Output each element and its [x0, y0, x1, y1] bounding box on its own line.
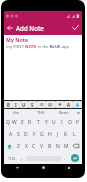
button[interactable]: More suggestions	[74, 109, 82, 116]
button[interactable]: X	[22, 140, 30, 152]
button[interactable]: A	[7, 128, 14, 140]
button[interactable]: Backspace	[70, 140, 82, 152]
button[interactable]: Hide keyboard	[4, 164, 30, 171]
button[interactable]: Recent apps	[56, 164, 82, 171]
staticText: Been	[59, 110, 69, 115]
button[interactable]: THE	[28, 109, 53, 116]
staticText: I	[15, 102, 17, 108]
button[interactable]: H	[46, 128, 54, 140]
button[interactable]: Format option 9	[73, 101, 82, 108]
button[interactable]: G	[38, 128, 46, 140]
staticText: ?123	[8, 156, 16, 161]
staticText: N	[56, 143, 60, 150]
staticText: V	[40, 143, 44, 150]
button[interactable]: Been	[53, 109, 74, 116]
button[interactable]: Format option 1	[4, 101, 12, 108]
staticText: S	[31, 102, 34, 108]
staticText: ☰	[40, 102, 44, 107]
staticText: X	[25, 143, 28, 150]
staticText: H	[48, 131, 52, 138]
button[interactable]: M	[62, 140, 70, 152]
staticText: A	[76, 102, 79, 108]
staticText: Q	[6, 119, 10, 126]
button[interactable]: Save note	[68, 20, 82, 35]
staticText: J	[57, 131, 59, 138]
button[interactable]: N	[54, 140, 62, 152]
button[interactable]: Format option 2	[12, 101, 20, 108]
button[interactable]: C	[30, 140, 38, 152]
button[interactable]: T	[34, 116, 42, 128]
button[interactable]: I	[58, 116, 66, 128]
staticText: I	[61, 119, 63, 126]
staticText: D	[24, 131, 28, 138]
staticText: THE	[37, 110, 45, 115]
button[interactable]: U	[50, 116, 58, 128]
staticText: B	[48, 143, 52, 150]
staticText: U	[52, 119, 56, 126]
button[interactable]: L	[70, 128, 78, 140]
staticText: ,	[21, 155, 23, 161]
button[interactable]: W	[11, 116, 18, 128]
button[interactable]: Format option 6	[46, 101, 55, 108]
staticText: my FIRST NOTE in the BLUE app	[6, 44, 69, 50]
staticText: B	[7, 102, 10, 108]
button[interactable]: ,	[19, 152, 25, 164]
button[interactable]: Format option 8	[64, 101, 73, 108]
staticText: F	[33, 131, 36, 138]
staticText: My Note	[6, 36, 29, 43]
button[interactable]: K	[62, 128, 70, 140]
button[interactable]: O	[66, 116, 74, 128]
staticText: T	[37, 119, 40, 126]
staticText: O	[68, 119, 72, 126]
button[interactable]: J	[54, 128, 62, 140]
button[interactable]: Q	[4, 116, 11, 128]
staticText: W	[12, 119, 17, 126]
staticText: K	[64, 131, 68, 138]
staticText: .	[64, 155, 66, 161]
button[interactable]: Z	[15, 140, 22, 152]
button[interactable]: ?123	[4, 152, 19, 164]
button[interactable]: Format option 4	[28, 101, 37, 108]
button[interactable]: Format option 3	[20, 101, 28, 108]
staticText: G	[40, 131, 44, 138]
button[interactable]: D	[22, 128, 30, 140]
button[interactable]: Enter	[68, 152, 82, 164]
button[interactable]: S	[14, 128, 22, 140]
button[interactable]: R	[26, 116, 34, 128]
staticText: ❖	[58, 102, 62, 107]
staticText: P	[76, 119, 80, 126]
staticText: the	[13, 110, 20, 115]
staticText: U	[22, 102, 26, 108]
staticText: M	[64, 143, 69, 150]
button[interactable]: Format option 5	[37, 101, 46, 108]
staticText: C	[32, 143, 36, 150]
staticText: S	[17, 131, 20, 138]
button[interactable]: Shift	[4, 140, 15, 152]
button[interactable]: the	[4, 109, 28, 116]
button[interactable]: Home	[30, 164, 56, 171]
button[interactable]: Navigate up	[4, 20, 16, 35]
staticText: E	[21, 119, 24, 126]
staticText: ▤	[48, 102, 53, 107]
staticText: Y	[45, 119, 48, 126]
staticText: R	[28, 119, 32, 126]
staticText: A	[9, 131, 13, 138]
button[interactable]: F	[30, 128, 38, 140]
staticText: A	[67, 102, 70, 108]
button[interactable]: V	[38, 140, 46, 152]
button[interactable]: .	[62, 152, 68, 164]
button[interactable]: Format option 7	[55, 101, 64, 108]
button[interactable]: B	[46, 140, 54, 152]
staticText: L	[73, 131, 76, 138]
staticText: Add Note	[16, 24, 44, 32]
button[interactable]: E	[18, 116, 26, 128]
button[interactable]: P	[74, 116, 82, 128]
button[interactable]: Y	[42, 116, 50, 128]
staticText: Z	[17, 143, 20, 150]
